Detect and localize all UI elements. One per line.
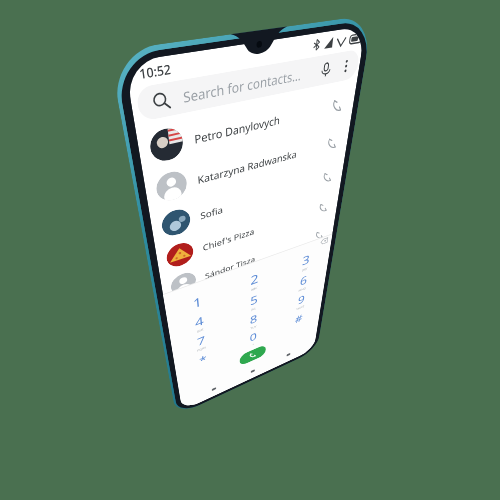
staticText: Petro Danylovych — [194, 112, 280, 147]
staticText: 5 — [250, 291, 258, 309]
staticText: Sándor Tisza — [205, 253, 256, 281]
staticText: # — [294, 311, 303, 326]
button[interactable]: 8 — [227, 301, 278, 340]
staticText: 1 — [192, 293, 203, 312]
button[interactable]: Backspace — [319, 235, 329, 247]
button[interactable]: 9 — [277, 283, 325, 320]
staticText: 9 — [297, 291, 306, 308]
button[interactable]: 0 — [228, 320, 277, 357]
staticText: 10:52 — [138, 59, 172, 83]
staticText: GHI — [196, 327, 204, 334]
button[interactable]: Navigation — [205, 383, 222, 395]
button[interactable]: Sándor Tisza — [160, 217, 335, 304]
staticText: MNO — [298, 286, 306, 293]
button[interactable]: * — [174, 340, 229, 380]
staticText: JKL — [251, 306, 256, 312]
button[interactable]: 6 — [278, 263, 328, 301]
button[interactable]: More options — [335, 52, 357, 79]
staticText: Search for contacts… — [182, 65, 302, 106]
staticText: 2 — [250, 270, 259, 289]
staticText: 7 — [196, 332, 206, 349]
staticText: TUV — [250, 324, 257, 330]
button[interactable]: Petro Danylovych — [135, 82, 357, 173]
staticText: + — [252, 342, 254, 346]
button[interactable]: 5 — [227, 282, 280, 322]
button[interactable]: Chief's Pizza — [155, 188, 340, 277]
button[interactable]: Call Chief's Pizza — [315, 198, 332, 218]
staticText: WXYZ — [296, 304, 305, 311]
button[interactable]: Katarzyna Radwanska — [143, 121, 351, 212]
button[interactable]: 7 — [171, 322, 228, 363]
staticText: Sofia — [200, 203, 223, 222]
button[interactable]: Call Sándor Tisza — [312, 226, 328, 245]
staticText: 3 — [301, 251, 311, 269]
staticText: 0 — [249, 329, 257, 345]
button[interactable]: Navigation — [245, 365, 260, 377]
button[interactable]: 2 — [226, 260, 281, 302]
staticText: Chief's Pizza — [202, 225, 255, 253]
button[interactable]: Dial — [239, 344, 266, 366]
button[interactable]: 3 — [280, 242, 331, 282]
staticText: Katarzyna Radwanska — [197, 147, 297, 187]
staticText: ABC — [251, 286, 258, 292]
staticText: DEF — [301, 266, 308, 273]
button[interactable]: 4 — [168, 302, 227, 345]
staticText: PQRS — [197, 346, 206, 353]
staticText: * — [198, 352, 208, 368]
button[interactable]: Search for contacts… — [135, 49, 361, 122]
staticText: 4 — [194, 312, 204, 331]
button[interactable]: Call Sofia — [319, 167, 337, 188]
staticText: 8 — [250, 311, 258, 327]
button[interactable]: 1 — [164, 281, 227, 325]
button[interactable]: # — [276, 301, 322, 337]
button[interactable]: Navigation — [281, 349, 295, 361]
staticText: 6 — [299, 272, 308, 289]
button[interactable]: Sofia — [149, 157, 345, 246]
button[interactable]: Call Petro Danylovych — [327, 93, 348, 118]
button[interactable]: Call Katarzyna Radwanska — [323, 132, 342, 155]
button[interactable]: Voice search — [314, 55, 338, 85]
